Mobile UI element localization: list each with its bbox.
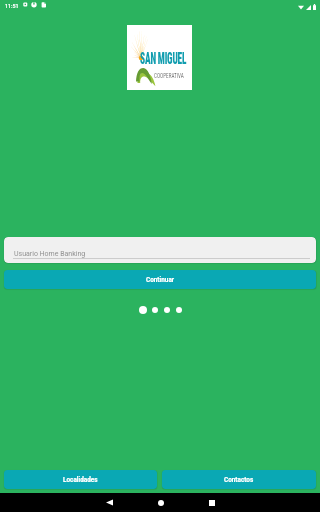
button[interactable]: Home bbox=[135, 493, 186, 512]
button[interactable]: Recent apps bbox=[186, 493, 237, 512]
button[interactable]: Contactos bbox=[162, 470, 316, 489]
button[interactable]: Localidades bbox=[4, 470, 157, 489]
staticText: SAN MIGUEL bbox=[140, 49, 186, 68]
staticText: Usuario Home Banking bbox=[14, 250, 86, 258]
button[interactable]: Back bbox=[84, 493, 135, 512]
staticText: 11:51 bbox=[5, 2, 19, 9]
staticText: Contactos bbox=[224, 476, 254, 484]
staticText: COOPERATIVA bbox=[154, 72, 184, 80]
staticText: Continuar bbox=[146, 276, 175, 284]
button[interactable]: Usuario Home Banking bbox=[4, 237, 316, 263]
staticText: Localidades bbox=[63, 476, 98, 484]
button[interactable]: Continuar bbox=[4, 270, 316, 289]
